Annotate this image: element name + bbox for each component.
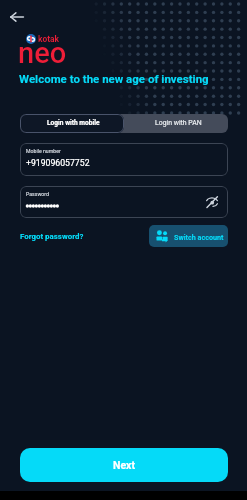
staticText: Password: [26, 191, 49, 197]
button[interactable]: Forgot password?: [20, 232, 84, 241]
staticText: kotak: [38, 34, 60, 44]
button[interactable]: Switch account: [149, 225, 228, 247]
staticText: Next: [113, 459, 135, 471]
button[interactable]: Password: [20, 186, 228, 218]
button[interactable]: Mobile number: [20, 143, 228, 176]
button[interactable]: Show password: [203, 193, 221, 211]
staticText: Login with mobile: [47, 119, 100, 127]
staticText: Mobile number: [26, 148, 61, 154]
staticText: Forgot password?: [20, 232, 84, 241]
button[interactable]: Login with PAN: [124, 114, 228, 133]
staticText: Welcome to the new age of investing: [19, 72, 209, 85]
button[interactable]: Login with mobile: [20, 114, 124, 133]
button[interactable]: Back: [5, 5, 29, 29]
staticText: +919096057752: [26, 158, 90, 168]
staticText: Switch account: [174, 233, 224, 241]
button[interactable]: Next: [20, 448, 228, 482]
staticText: neo: [18, 36, 67, 70]
staticText: Login with PAN: [155, 119, 202, 127]
